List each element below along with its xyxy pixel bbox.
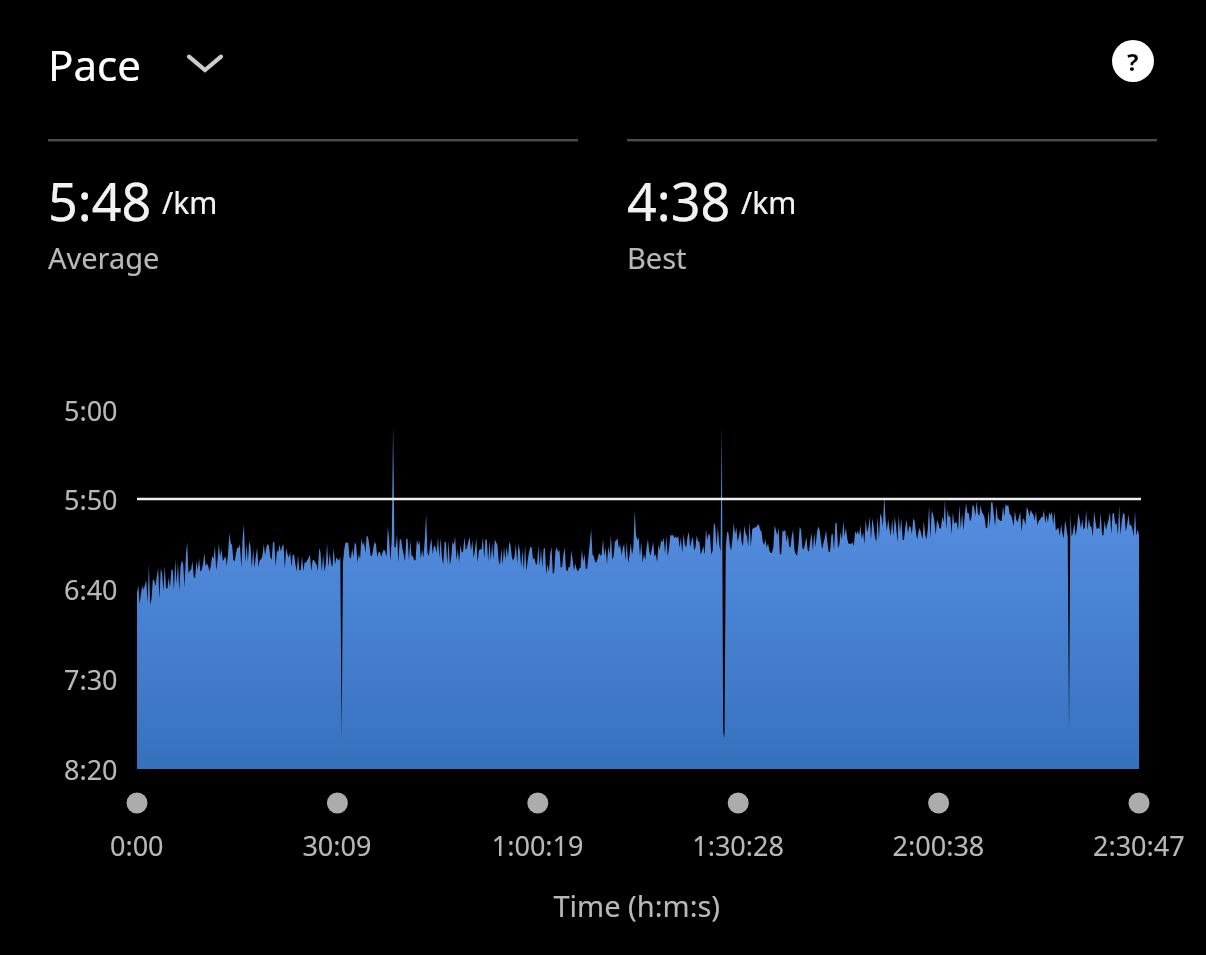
button[interactable]: Help xyxy=(1112,40,1156,84)
button[interactable]: Pace, change metric xyxy=(48,28,248,98)
button[interactable] xyxy=(627,139,1157,299)
button[interactable] xyxy=(48,139,578,299)
